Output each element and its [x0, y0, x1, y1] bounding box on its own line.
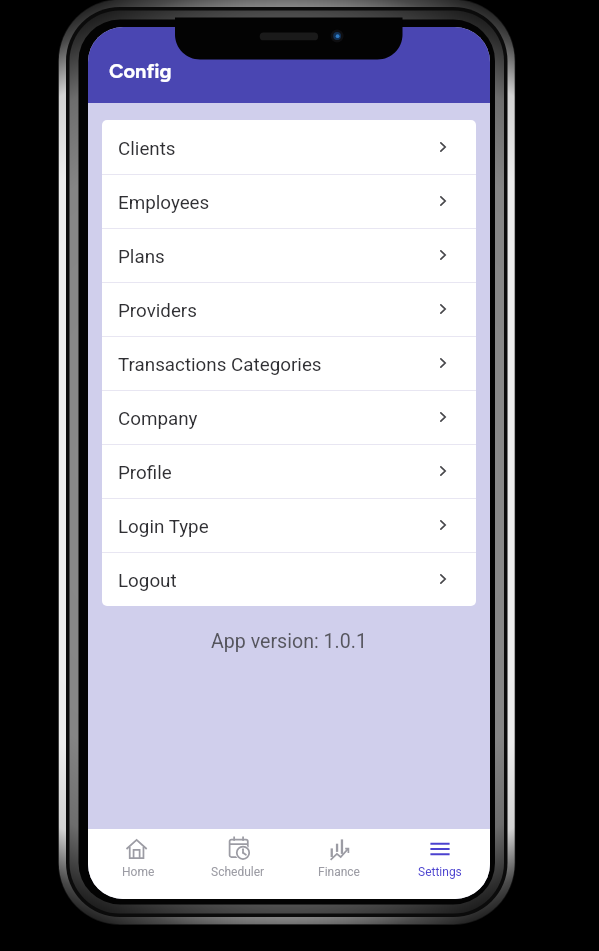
staticText: Clients [118, 138, 176, 160]
button[interactable]: Transactions Categories [102, 336, 476, 390]
staticText: App version: 1.0.1 [88, 630, 490, 653]
staticText: Company [118, 408, 198, 430]
staticText: Finance [318, 865, 360, 879]
staticText: Settings [418, 865, 462, 879]
staticText: Logout [118, 570, 177, 592]
button[interactable]: Logout [102, 552, 476, 606]
button[interactable]: Scheduler [188, 829, 288, 899]
staticText: Home [122, 865, 155, 879]
button[interactable]: Profile [102, 444, 476, 498]
button[interactable]: Providers [102, 282, 476, 336]
button[interactable]: Clients [102, 120, 476, 174]
button[interactable]: Plans [102, 228, 476, 282]
staticText: Scheduler [211, 865, 265, 879]
staticText: Profile [118, 462, 172, 484]
staticText: Employees [118, 192, 210, 214]
button[interactable]: Settings [389, 829, 490, 899]
staticText: Providers [118, 300, 197, 322]
staticText: Plans [118, 246, 165, 268]
staticText: Login Type [118, 516, 209, 538]
button[interactable]: Employees [102, 174, 476, 228]
button[interactable]: Login Type [102, 498, 476, 552]
staticText: Transactions Categories [118, 354, 322, 376]
button[interactable]: Home [88, 829, 188, 899]
button[interactable]: Finance [288, 829, 389, 899]
button[interactable]: Company [102, 390, 476, 444]
staticText: Config [109, 59, 172, 83]
